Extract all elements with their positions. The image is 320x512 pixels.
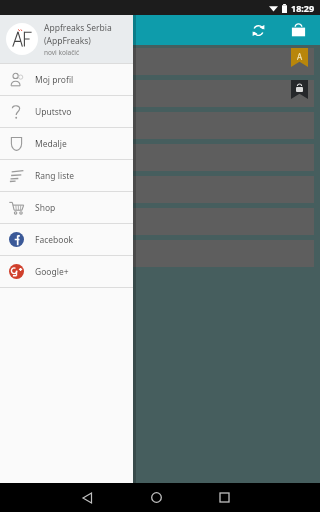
- staticText: Znalac Pro: [35, 21, 104, 40]
- button[interactable]: Refresh: [244, 16, 272, 44]
- staticText: Facebook: [35, 234, 74, 246]
- button[interactable]: [6, 112, 314, 139]
- button[interactable]: Recent apps: [208, 483, 240, 512]
- button[interactable]: Facebook: [0, 224, 133, 255]
- button[interactable]: Medalje: [0, 128, 133, 159]
- button[interactable]: Open navigation drawer: [0, 17, 18, 43]
- staticText: (AppFreaks): [44, 35, 91, 47]
- button[interactable]: [6, 240, 314, 267]
- staticText: Moj profil: [35, 74, 74, 86]
- button[interactable]: Moj profil: [0, 64, 133, 95]
- staticText: Medalje: [35, 138, 67, 150]
- button[interactable]: [6, 144, 314, 171]
- button[interactable]: Google+: [0, 256, 133, 287]
- staticText: 18:29: [291, 2, 315, 14]
- staticText: novi kolačić: [44, 48, 80, 57]
- button[interactable]: Rang liste: [0, 160, 133, 191]
- button[interactable]: Uputstvo: [0, 96, 133, 127]
- staticText: A: [297, 51, 303, 62]
- staticText: PR: [9, 23, 24, 37]
- button[interactable]: A: [6, 48, 314, 75]
- staticText: Shop: [35, 202, 56, 214]
- button[interactable]: Home: [140, 483, 172, 512]
- button[interactable]: [6, 176, 314, 203]
- button[interactable]: [6, 208, 314, 235]
- staticText: Google+: [35, 266, 69, 278]
- button[interactable]: Back: [72, 483, 104, 512]
- button[interactable]: Shop: [0, 192, 133, 223]
- button[interactable]: Appfreaks Serbia: [0, 15, 133, 63]
- button[interactable]: [6, 80, 314, 107]
- button[interactable]: Shop: [284, 16, 312, 44]
- staticText: Uputstvo: [35, 106, 72, 118]
- staticText: 2: [24, 26, 28, 35]
- staticText: Appfreaks Serbia: [44, 22, 112, 34]
- staticText: Rang liste: [35, 170, 75, 182]
